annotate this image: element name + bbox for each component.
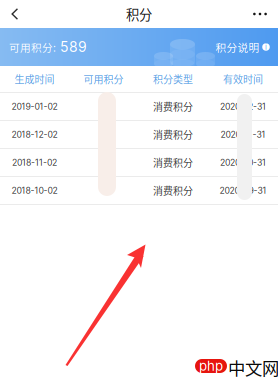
staticText: 有效时间 [223, 72, 263, 86]
staticText: 中文网 [228, 355, 278, 379]
staticText: 积分类型 [153, 72, 193, 86]
staticText: 2020-12-31 [220, 101, 266, 112]
staticText: 2018-12-02 [11, 129, 57, 140]
staticText: 2020-10-31 [220, 157, 266, 168]
button[interactable]: More options [242, 0, 278, 28]
staticText: 消费积分 [153, 183, 193, 198]
staticText: 589 [56, 38, 87, 55]
staticText: 2018-11-02 [12, 157, 57, 168]
staticText: 可用积分: [9, 39, 56, 55]
staticText: 消费积分 [153, 127, 193, 142]
staticText: 生成时间 [14, 72, 54, 86]
button[interactable]: 积分说明 [215, 33, 278, 61]
button[interactable]: Back [0, 0, 30, 28]
staticText: i [265, 43, 267, 51]
staticText: 消费积分 [153, 99, 193, 114]
staticText: 2019-01-02 [11, 101, 57, 112]
staticText: 积分说明 [215, 39, 259, 55]
staticText: 积分 [126, 4, 152, 24]
staticText: 2018-10-02 [11, 185, 57, 196]
staticText: 2020-11-31 [220, 129, 265, 140]
staticText: 消费积分 [153, 155, 193, 170]
staticText: 可用积分 [83, 72, 123, 86]
staticText: php [199, 358, 223, 374]
staticText: 2020-09-31 [219, 185, 266, 196]
